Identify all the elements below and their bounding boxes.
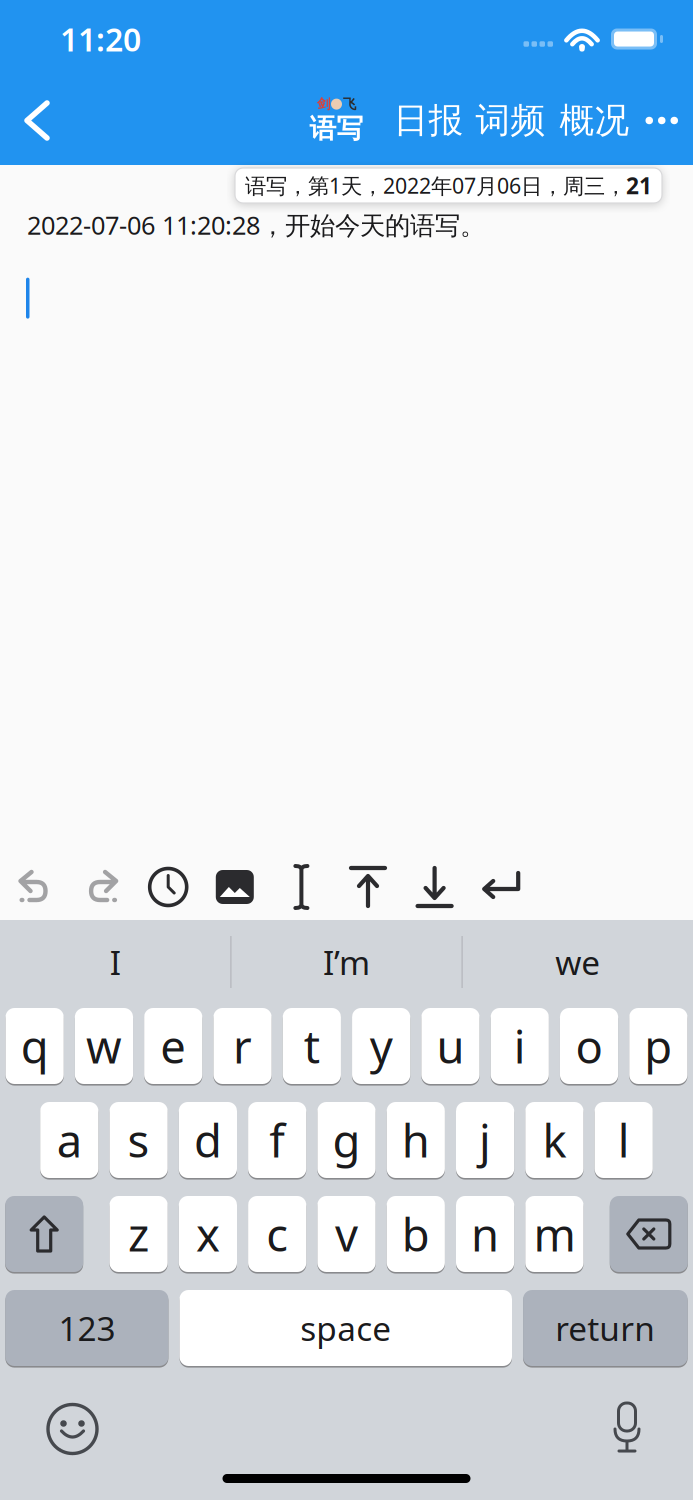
button[interactable]: 日报 <box>363 77 463 164</box>
button[interactable]: j <box>456 1102 514 1178</box>
staticText: 概况 <box>559 99 629 142</box>
button[interactable]: Shift <box>5 1196 83 1272</box>
staticText: x <box>196 1204 220 1264</box>
staticText: 语写 <box>309 112 363 145</box>
button[interactable]: u <box>421 1008 480 1084</box>
staticText: 飞 <box>343 96 356 112</box>
button[interactable]: 语写，第1天，2022年07月06日，周三， <box>235 168 662 203</box>
staticText: l <box>618 1110 630 1170</box>
button[interactable]: v <box>317 1196 376 1272</box>
button[interactable]: c <box>248 1196 306 1272</box>
button[interactable]: we <box>463 920 693 1004</box>
staticText: u <box>436 1016 464 1076</box>
button[interactable]: Back <box>0 85 59 156</box>
staticText: I <box>110 940 121 984</box>
staticText: we <box>555 940 600 984</box>
staticText: 词频 <box>475 99 545 142</box>
button[interactable]: n <box>456 1196 514 1272</box>
button[interactable]: p <box>629 1008 687 1084</box>
staticText: a <box>57 1110 82 1170</box>
staticText: 11:20 <box>60 18 141 60</box>
button[interactable]: s <box>109 1102 168 1178</box>
button[interactable]: Insert Photo <box>215 864 255 910</box>
button[interactable]: m <box>525 1196 583 1272</box>
button[interactable]: l <box>595 1102 653 1178</box>
button[interactable]: e <box>144 1008 202 1084</box>
button[interactable]: g <box>317 1102 376 1178</box>
staticText: k <box>542 1110 566 1170</box>
staticText: 日报 <box>393 99 463 142</box>
button[interactable]: Dictation <box>590 1403 693 1455</box>
staticText: q <box>21 1016 49 1076</box>
staticText: h <box>402 1110 430 1170</box>
staticText: e <box>160 1016 186 1076</box>
staticText: t <box>304 1016 320 1076</box>
staticText: v <box>335 1204 358 1264</box>
staticText: c <box>266 1204 288 1264</box>
button[interactable]: 词频 <box>463 77 545 164</box>
button[interactable]: space <box>179 1290 512 1366</box>
staticText: z <box>128 1204 149 1264</box>
button[interactable]: x <box>179 1196 237 1272</box>
staticText: j <box>479 1110 491 1170</box>
staticText: 剑 <box>317 96 330 112</box>
button[interactable]: 概况 <box>545 77 629 164</box>
button[interactable]: y <box>352 1008 410 1084</box>
button[interactable]: w <box>75 1008 133 1084</box>
staticText: space <box>300 1306 391 1350</box>
button[interactable]: r <box>213 1008 272 1084</box>
button[interactable]: h <box>387 1102 445 1178</box>
button[interactable]: Scroll To Bottom <box>415 864 455 910</box>
button[interactable]: return <box>523 1290 688 1366</box>
button[interactable]: Undo <box>15 864 55 910</box>
staticText: n <box>471 1204 499 1264</box>
button[interactable]: f <box>248 1102 306 1178</box>
button[interactable]: Text Cursor <box>281 864 321 910</box>
button[interactable]: Redo <box>82 864 122 910</box>
staticText: b <box>402 1204 430 1264</box>
button[interactable]: Emoji <box>0 1404 117 1453</box>
button[interactable]: Return <box>481 864 521 910</box>
button[interactable]: Delete <box>610 1196 688 1272</box>
button[interactable]: t <box>283 1008 341 1084</box>
button[interactable]: More <box>629 93 693 148</box>
staticText: y <box>370 1016 393 1076</box>
staticText: d <box>194 1110 222 1170</box>
button[interactable]: a <box>40 1102 98 1178</box>
button[interactable]: History <box>148 864 188 910</box>
staticText: g <box>332 1110 360 1170</box>
staticText: 123 <box>58 1306 115 1350</box>
button[interactable]: I’m <box>231 920 461 1004</box>
button[interactable]: d <box>179 1102 237 1178</box>
staticText: r <box>233 1016 252 1076</box>
button[interactable]: 123 <box>5 1290 168 1366</box>
staticText: w <box>86 1016 122 1076</box>
staticText: o <box>576 1016 603 1076</box>
button[interactable]: i <box>491 1008 549 1084</box>
button[interactable]: b <box>387 1196 445 1272</box>
staticText: m <box>533 1204 575 1264</box>
button[interactable]: z <box>109 1196 168 1272</box>
button[interactable]: I <box>0 920 230 1004</box>
staticText: s <box>128 1110 150 1170</box>
staticText: return <box>555 1306 655 1350</box>
button[interactable]: Scroll To Top <box>348 864 388 910</box>
button[interactable]: k <box>525 1102 583 1178</box>
staticText: 语写，第1天，2022年07月06日，周三， <box>245 171 626 200</box>
staticText: I’m <box>323 940 370 984</box>
button[interactable]: q <box>6 1008 64 1084</box>
staticText: f <box>269 1110 285 1170</box>
staticText: i <box>514 1016 526 1076</box>
staticText: p <box>644 1016 672 1076</box>
staticText: 2022-07-06 11:20:28，开始今天的语写。 <box>27 208 485 242</box>
staticText: 21 <box>626 170 652 200</box>
button[interactable]: o <box>560 1008 618 1084</box>
